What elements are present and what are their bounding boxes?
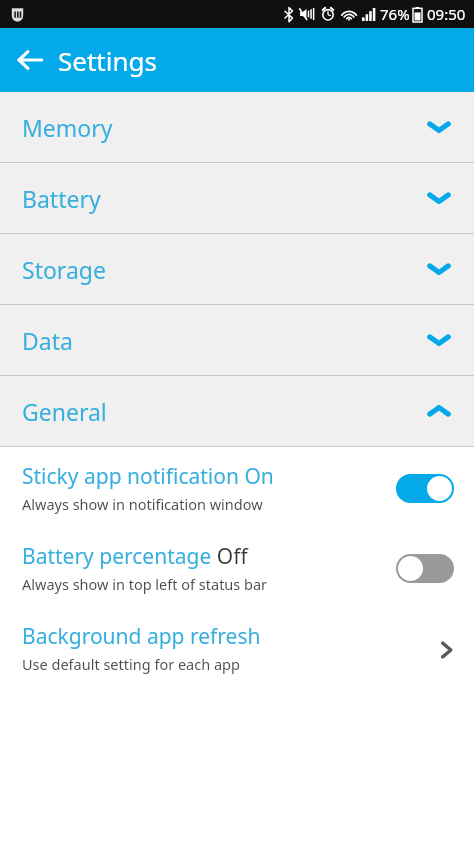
button[interactable]: Sticky app notification On	[0, 458, 474, 518]
button[interactable]: Battery percentage Off	[0, 538, 474, 598]
staticText: Battery	[22, 183, 101, 214]
button[interactable]: Data	[0, 305, 474, 375]
button[interactable]: Background app refresh	[0, 618, 474, 678]
staticText: Background app refresh	[22, 622, 261, 651]
staticText: Data	[22, 325, 73, 356]
button[interactable]: Storage	[0, 234, 474, 304]
staticText: Storage	[22, 254, 106, 285]
button[interactable]: Off	[396, 554, 454, 583]
button[interactable]: General	[0, 376, 474, 446]
button[interactable]: Back	[6, 36, 54, 84]
button[interactable]: Memory	[0, 92, 474, 162]
staticText: Settings	[58, 43, 157, 78]
button[interactable]: On	[396, 474, 454, 503]
button[interactable]: Battery	[0, 163, 474, 233]
staticText: Memory	[22, 112, 113, 143]
staticText: Always show in notification window	[22, 494, 263, 514]
staticText: Sticky app notification On	[22, 462, 274, 491]
staticText: 09:50	[427, 4, 466, 24]
staticText: Battery percentage Off	[22, 542, 248, 571]
staticText: 76%	[380, 4, 410, 24]
staticText: Use default setting for each app	[22, 654, 240, 674]
staticText: Always show in top left of status bar	[22, 574, 268, 594]
staticText: General	[22, 396, 107, 427]
